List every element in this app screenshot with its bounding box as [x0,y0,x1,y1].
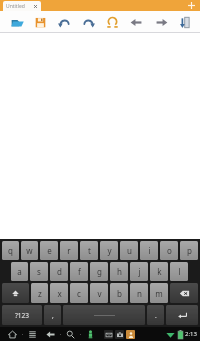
staticText: u [127,245,132,256]
button[interactable] [63,305,145,325]
button[interactable]: a [11,262,28,281]
button[interactable]: k [150,262,168,281]
button[interactable]: g [90,262,108,281]
staticText: c [77,288,81,299]
staticText: x [57,288,62,299]
staticText: q [8,245,13,256]
button[interactable]: x [50,283,68,303]
button[interactable]: Forward [153,14,169,30]
staticText: p [187,245,192,256]
staticText: . [155,311,157,320]
button[interactable]: Insert [177,14,193,30]
button[interactable]: i [140,241,158,260]
staticText: k [157,266,162,277]
button[interactable]: v [90,283,108,303]
button[interactable]: Search [64,328,77,341]
staticText: i [148,245,151,256]
button[interactable]: Redo [80,14,96,30]
staticText: r [67,245,71,256]
button[interactable]: s [30,262,48,281]
button[interactable]: Shift [2,283,29,303]
staticText: , [52,311,54,320]
staticText: l [178,266,181,277]
button[interactable]: y [100,241,118,260]
button[interactable]: Backspace [170,283,198,303]
button[interactable]: j [130,262,148,281]
button[interactable]: t [80,241,98,260]
button[interactable]: Back [44,328,57,341]
staticText: Untitled [6,3,25,10]
staticText: z [38,288,42,299]
staticText: t [88,245,91,256]
button[interactable]: d [50,262,68,281]
button[interactable]: Open [9,14,25,30]
button[interactable]: p [180,241,198,260]
staticText: d [57,266,62,277]
staticText: s [37,266,41,277]
button[interactable]: h [110,262,128,281]
button[interactable]: n [130,283,148,303]
staticText: j [138,266,141,277]
button[interactable]: Recent apps [26,328,39,341]
button[interactable]: Save [32,14,48,30]
button[interactable]: f [70,262,88,281]
button[interactable]: Back [128,14,144,30]
staticText: f [78,266,81,277]
staticText: w [26,245,33,256]
staticText: y [107,245,112,256]
staticText: h [117,266,122,277]
button[interactable]: m [150,283,168,303]
button[interactable]: z [31,283,48,303]
staticText: o [167,245,172,256]
button[interactable]: . [147,305,164,325]
button[interactable]: Untitled [3,1,41,11]
button[interactable]: e [40,241,58,260]
button[interactable]: c [70,283,88,303]
button[interactable]: q [2,241,19,260]
button[interactable]: o [160,241,178,260]
button[interactable]: Enter [166,305,198,325]
button[interactable]: u [120,241,138,260]
button[interactable]: Keyboard [84,328,97,341]
staticText: v [97,288,102,299]
staticText: b [117,288,122,299]
staticText: m [155,288,163,299]
button[interactable]: b [110,283,128,303]
staticText: g [97,266,102,277]
button[interactable]: Undo [56,14,72,30]
button[interactable]: ?123 [2,305,42,325]
button[interactable]: Special character [104,14,120,30]
staticText: n [137,288,142,299]
button[interactable]: Home [6,328,19,341]
button[interactable]: , [44,305,61,325]
button[interactable]: New tab [187,1,196,10]
button[interactable]: r [60,241,78,260]
staticText: 2:13 [185,330,197,338]
button[interactable]: l [170,262,188,281]
staticText: ?123 [15,311,29,320]
staticText: a [17,266,22,277]
button[interactable]: w [21,241,38,260]
staticText: e [47,245,52,256]
